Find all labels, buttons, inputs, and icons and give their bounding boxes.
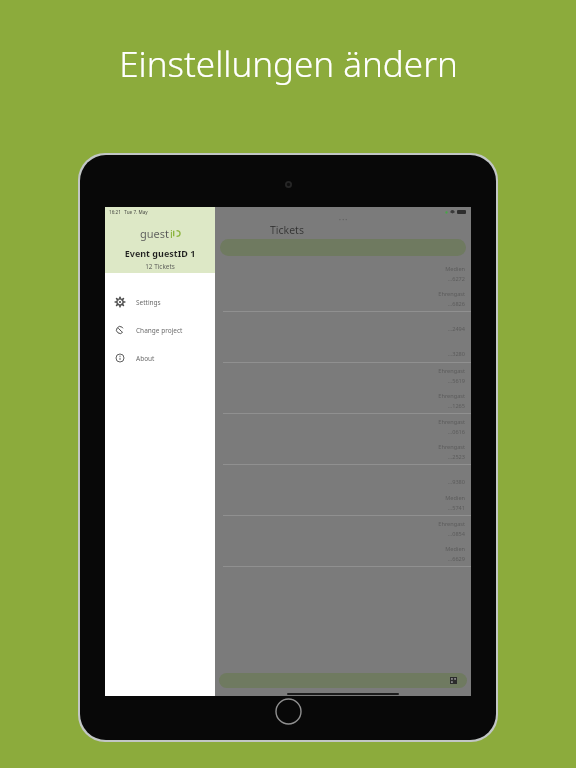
button[interactable]: Settings [105, 288, 215, 316]
staticText: 12 Tickets [105, 262, 215, 271]
staticText: Einstellungen ändern [119, 40, 458, 88]
button[interactable]: About [105, 344, 215, 372]
staticText: Settings [136, 298, 161, 307]
staticText: guest [140, 226, 170, 241]
button[interactable]: Home [275, 698, 302, 725]
staticText: 16:21 Tue 7. May [109, 209, 148, 215]
staticText: Change project [136, 326, 183, 335]
staticText: Event guestID 1 [105, 247, 215, 259]
staticText: • • • [339, 217, 348, 224]
staticText: About [136, 354, 155, 363]
button[interactable]: Search [220, 239, 466, 256]
button[interactable]: Change project [105, 316, 215, 344]
staticText: i [170, 226, 173, 241]
button[interactable]: Scan ticket [450, 677, 457, 684]
staticText: Tickets [270, 223, 304, 237]
